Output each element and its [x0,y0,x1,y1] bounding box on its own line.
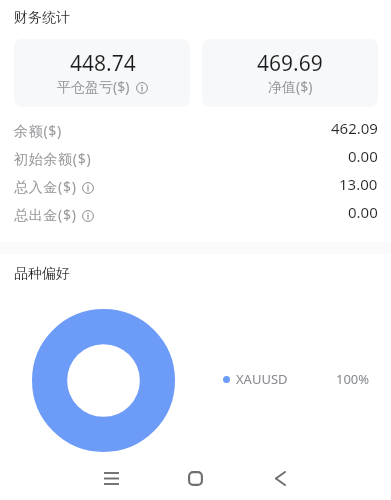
button[interactable]: 总出金($) [0,200,391,228]
button[interactable]: 余额($) [0,116,391,144]
other: Symbol preference pie chart [32,309,175,452]
staticText: 余额($) [14,121,62,140]
button[interactable]: Home [171,459,219,497]
staticText: 13.00 [339,174,378,194]
button[interactable]: 初始余额($) [0,144,391,172]
staticText: 100% [336,370,370,388]
staticText: 初始余额($) [14,149,92,168]
staticText: 总入金($) [14,177,77,196]
staticText: 462.09 [331,118,378,138]
staticText: 平仓盈亏($) [57,77,130,96]
staticText: 总出金($) [14,205,77,224]
button[interactable]: 总入金($) [0,172,391,200]
button[interactable]: 448.74 [14,39,190,107]
staticText: 469.69 [257,49,323,78]
button[interactable]: XAUUSD [223,370,370,388]
staticText: 财务统计 [14,9,70,27]
staticText: 0.00 [348,146,378,166]
button[interactable]: Recent apps [87,459,135,497]
staticText: 0.00 [348,202,378,222]
staticText: 448.74 [70,49,136,78]
staticText: XAUUSD [236,370,288,388]
staticText: 品种偏好 [14,265,70,283]
button[interactable]: Back [256,459,304,497]
button[interactable]: 469.69 [202,39,378,107]
staticText: 净值($) [268,77,313,96]
